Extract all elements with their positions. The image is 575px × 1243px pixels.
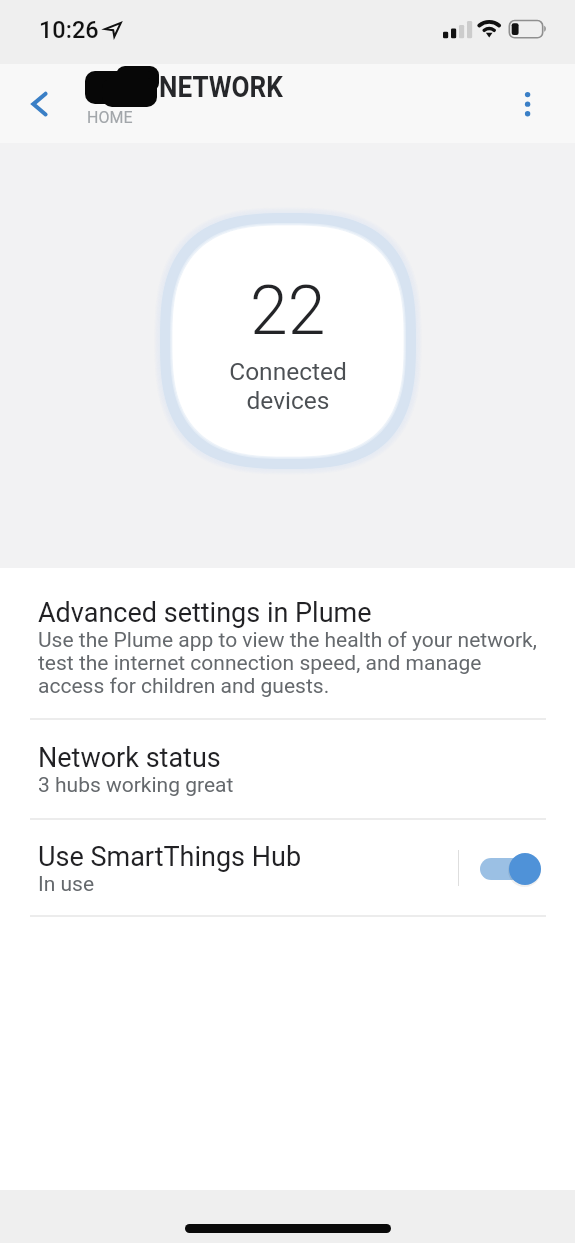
button[interactable] (0, 719, 575, 818)
staticText: Advanced settings in Plume (38, 597, 372, 629)
button[interactable]: More options (505, 72, 550, 116)
staticText: 22 (250, 271, 326, 351)
staticText: 10:26 (39, 16, 99, 44)
staticText: HOME (87, 108, 133, 127)
button[interactable] (0, 819, 575, 915)
staticText: NETWORK (159, 70, 283, 104)
button[interactable]: Use SmartThings Hub toggle (472, 846, 552, 892)
button[interactable]: Back (14, 82, 58, 126)
staticText: Use the Plume app to view the health of … (38, 628, 548, 698)
staticText: In use (38, 872, 95, 897)
button[interactable]: 22 (160, 213, 416, 469)
staticText: Use SmartThings Hub (38, 841, 302, 873)
staticText: Network status (38, 742, 221, 774)
button[interactable] (0, 568, 575, 718)
staticText: 3 hubs working great (38, 773, 234, 798)
staticText: Connected devices (160, 357, 416, 415)
